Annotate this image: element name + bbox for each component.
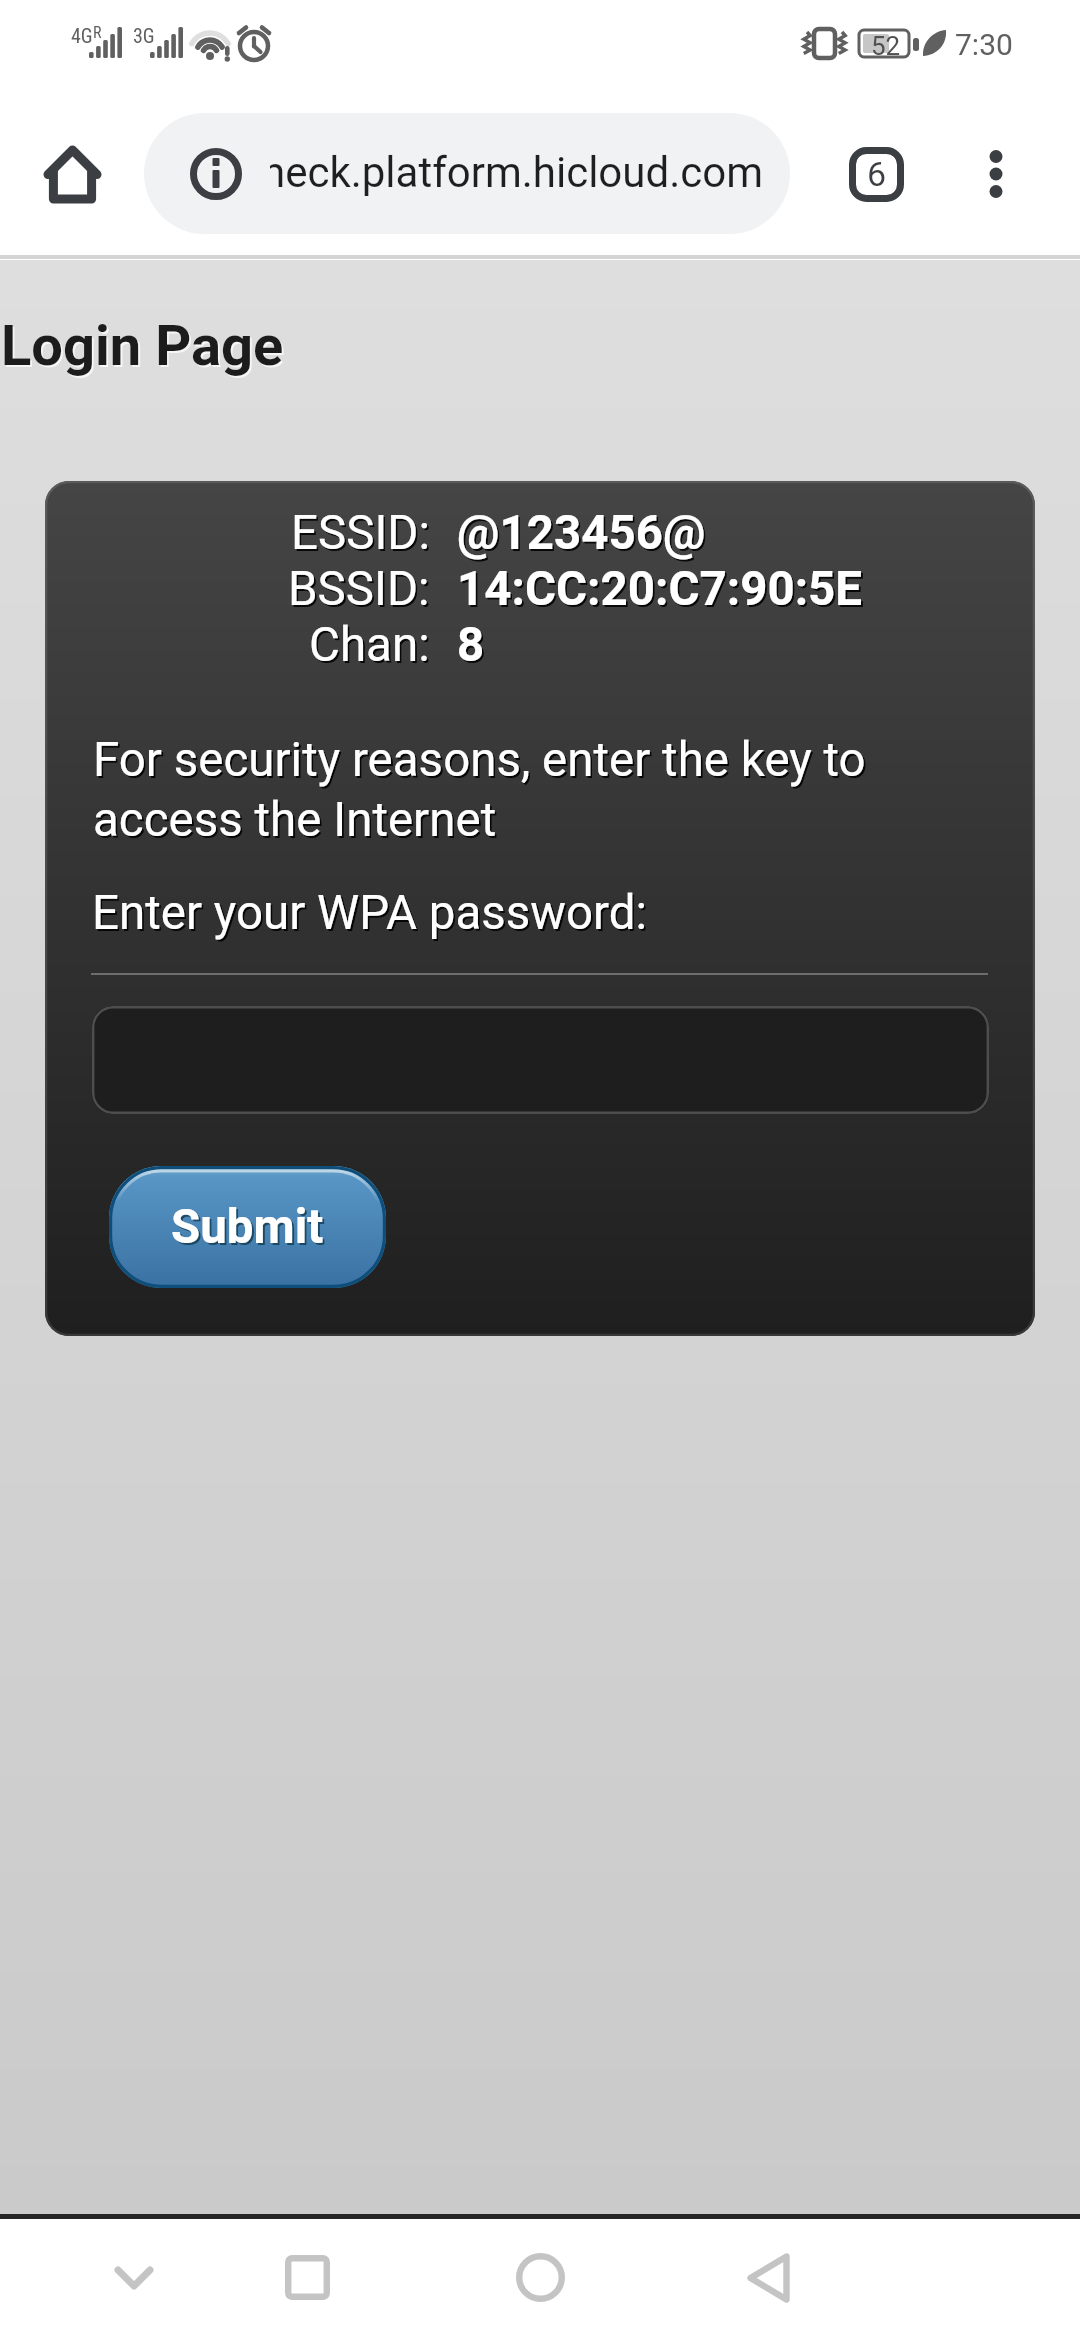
staticText: R bbox=[93, 23, 102, 42]
button[interactable]: Submit bbox=[109, 1166, 386, 1288]
staticText: 6 bbox=[867, 154, 887, 194]
button[interactable]: Back bbox=[668, 2219, 868, 2340]
button[interactable]: Tabs bbox=[826, 124, 926, 224]
staticText: 4G bbox=[71, 24, 93, 47]
staticText: Submit bbox=[171, 1199, 324, 1255]
staticText: Login Page bbox=[1, 313, 284, 379]
staticText: Chan: bbox=[309, 617, 430, 673]
staticText: heck.platform.hicloud.com bbox=[270, 148, 764, 197]
staticText: 3G bbox=[133, 24, 155, 47]
button[interactable]: Home bbox=[22, 124, 122, 224]
staticText: For security reasons, enter the key to a… bbox=[93, 732, 903, 848]
button[interactable]: Password field bbox=[92, 1006, 989, 1114]
button[interactable]: Hide keyboard bbox=[34, 2219, 234, 2340]
staticText: @123456@ bbox=[457, 505, 706, 561]
staticText: 7:30 bbox=[955, 27, 1013, 62]
staticText: 8 bbox=[457, 617, 485, 673]
staticText: Enter your WPA password: bbox=[92, 885, 648, 941]
button[interactable]: Recent apps bbox=[207, 2219, 407, 2340]
button[interactable]: heck.platform.hicloud.com bbox=[144, 113, 790, 234]
staticText: ESSID: bbox=[291, 505, 430, 561]
staticText: 52 bbox=[871, 31, 901, 61]
button[interactable]: More options bbox=[946, 124, 1046, 224]
button[interactable]: Home bbox=[440, 2219, 640, 2340]
staticText: BSSID: bbox=[288, 561, 430, 617]
staticText: 14:CC:20:C7:90:5E bbox=[457, 561, 863, 617]
